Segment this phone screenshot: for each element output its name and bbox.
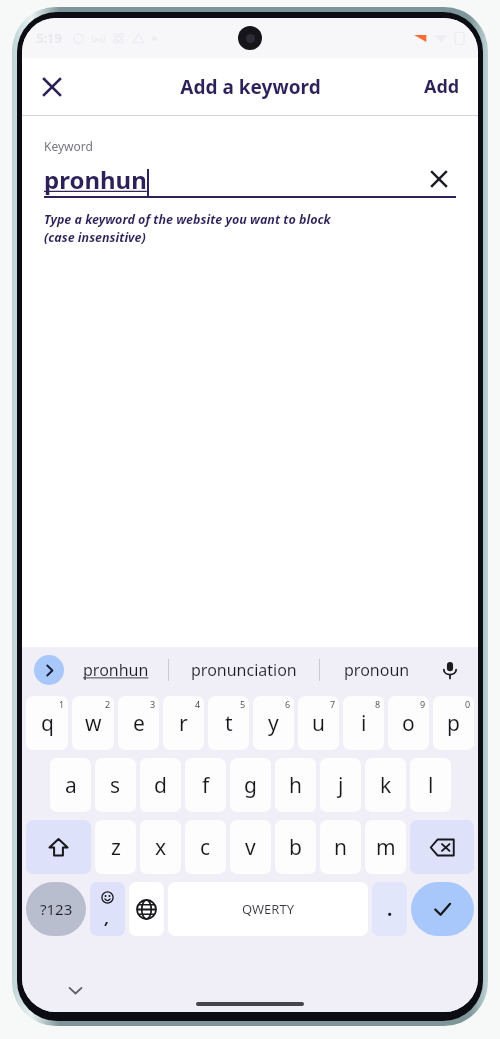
button[interactable]: x	[140, 820, 181, 874]
button[interactable]: i	[343, 696, 384, 750]
button[interactable]: m	[365, 820, 406, 874]
staticText: a	[65, 771, 77, 800]
button[interactable]: pronunciation	[169, 647, 319, 693]
staticText: j	[338, 771, 344, 800]
button[interactable]: pronoun	[320, 647, 434, 693]
staticText: 9	[420, 698, 426, 710]
button[interactable]: d	[140, 758, 181, 812]
button[interactable]: k	[365, 758, 406, 812]
staticText: ,	[105, 907, 110, 929]
staticText: x	[155, 833, 167, 862]
button[interactable]: pronhun	[64, 647, 168, 693]
button[interactable]: a	[50, 758, 91, 812]
button[interactable]: u	[298, 696, 339, 750]
staticText: b	[289, 833, 302, 862]
button[interactable]: Add	[410, 64, 474, 109]
button[interactable]: c	[185, 820, 226, 874]
button[interactable]: q	[26, 696, 68, 750]
button[interactable]: t	[208, 696, 249, 750]
button[interactable]: Backspace	[410, 820, 474, 874]
staticText: pronhun	[44, 163, 147, 196]
staticText: k	[380, 771, 392, 800]
button[interactable]: More suggestions	[34, 655, 64, 685]
button[interactable]: o	[388, 696, 429, 750]
staticText: QWERTY	[242, 900, 295, 918]
staticText: u	[312, 709, 325, 738]
button[interactable]: r	[163, 696, 204, 750]
button[interactable]: Shift	[26, 820, 91, 874]
staticText: m	[376, 833, 396, 862]
button[interactable]: j	[320, 758, 361, 812]
button[interactable]: f	[185, 758, 226, 812]
staticText: t	[225, 709, 233, 738]
staticText: Add a keyword	[180, 74, 321, 100]
staticText: c	[200, 833, 211, 862]
button[interactable]: z	[95, 820, 136, 874]
staticText: r	[179, 709, 188, 738]
button[interactable]: b	[275, 820, 316, 874]
staticText: 3	[150, 698, 156, 710]
button[interactable]: v	[230, 820, 271, 874]
staticText: 8	[375, 698, 381, 710]
button[interactable]: h	[275, 758, 316, 812]
staticText: o	[402, 709, 415, 738]
staticText: 0	[465, 698, 471, 710]
staticText: d	[154, 771, 167, 800]
staticText: q	[41, 709, 54, 738]
button[interactable]: p	[433, 696, 474, 750]
staticText: f	[202, 771, 210, 800]
staticText: z	[111, 833, 121, 862]
button[interactable]: QWERTY	[168, 882, 368, 936]
button[interactable]: .	[372, 882, 407, 936]
staticText: 6	[285, 698, 291, 710]
button[interactable]: Hide keyboard	[60, 975, 90, 1005]
button[interactable]: n	[320, 820, 361, 874]
button[interactable]: w	[72, 696, 114, 750]
staticText: n	[334, 833, 347, 862]
staticText: pronhun	[83, 659, 149, 681]
staticText: Type a keyword of the website you want t…	[44, 211, 331, 228]
staticText: 5:19	[36, 29, 62, 47]
button[interactable]: Voice input	[434, 654, 466, 686]
staticText: 1	[59, 698, 65, 710]
button[interactable]: g	[230, 758, 271, 812]
staticText: i	[361, 709, 367, 738]
button[interactable]: l	[410, 758, 451, 812]
staticText: w	[85, 709, 102, 738]
button[interactable]: s	[95, 758, 136, 812]
button[interactable]: Clear text	[422, 162, 456, 196]
staticText: ?123	[40, 899, 73, 919]
staticText: 2	[105, 698, 111, 710]
staticText: (case insensitive)	[44, 229, 146, 246]
staticText: 5	[240, 698, 246, 710]
button[interactable]: Enter	[411, 882, 474, 936]
button[interactable]: ?123	[26, 882, 86, 936]
staticText: 7	[330, 698, 336, 710]
staticText: 4	[195, 698, 201, 710]
button[interactable]: Emoji	[90, 882, 125, 936]
staticText: pronunciation	[191, 659, 297, 681]
staticText: p	[447, 709, 460, 738]
staticText: s	[110, 771, 121, 800]
staticText: Keyword	[44, 138, 93, 154]
staticText: .	[387, 896, 393, 922]
staticText: l	[428, 771, 434, 800]
staticText: g	[244, 771, 257, 800]
button[interactable]: y	[253, 696, 294, 750]
button[interactable]: Switch language	[129, 882, 164, 936]
staticText: pronoun	[344, 659, 410, 681]
staticText: Add	[424, 74, 460, 99]
staticText: e	[133, 709, 145, 738]
button[interactable]: e	[118, 696, 159, 750]
staticText: y	[268, 709, 279, 738]
staticText: h	[289, 771, 302, 800]
button[interactable]: Close	[28, 63, 76, 111]
staticText: v	[245, 833, 256, 862]
